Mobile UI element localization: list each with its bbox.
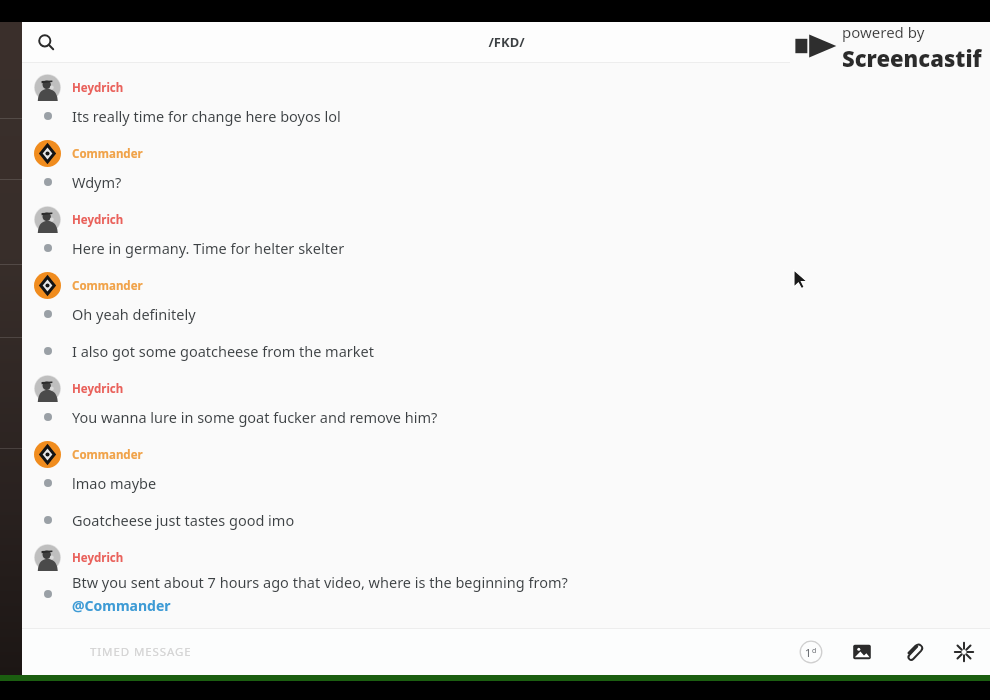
- staticText: Its really time for change here boyos lo…: [72, 106, 341, 126]
- staticText: Here in germany. Time for helter skelter: [72, 238, 345, 258]
- button[interactable]: Search: [28, 24, 64, 60]
- staticText: Heydrich: [72, 212, 124, 228]
- staticText: Commander: [72, 278, 143, 294]
- staticText: 1: [805, 645, 812, 660]
- staticText: powered by: [842, 22, 925, 42]
- staticText: Goatcheese just tastes good imo: [72, 510, 295, 530]
- button[interactable]: @Commander: [72, 596, 171, 615]
- staticText: Wdym?: [72, 172, 122, 192]
- button[interactable]: Message timer: [791, 632, 831, 672]
- staticText: TIMED MESSAGE: [90, 644, 192, 660]
- staticText: Oh yeah definitely: [72, 304, 196, 324]
- button[interactable]: TIMED MESSAGE: [22, 629, 791, 675]
- staticText: I also got some goatcheese from the mark…: [72, 341, 374, 361]
- staticText: Screencastify: [842, 43, 990, 70]
- staticText: Heydrich: [72, 381, 124, 397]
- staticText: Heydrich: [72, 80, 124, 96]
- staticText: Commander: [72, 146, 143, 162]
- button[interactable]: Send photo: [842, 632, 882, 672]
- staticText: Btw you sent about 7 hours ago that vide…: [72, 572, 568, 592]
- staticText: You wanna lure in some goat fucker and r…: [72, 407, 438, 427]
- button[interactable]: More options: [944, 632, 984, 672]
- staticText: lmao maybe: [72, 473, 157, 493]
- button[interactable]: Attach file: [893, 632, 933, 672]
- staticText: Commander: [72, 447, 143, 463]
- staticText: d: [812, 646, 817, 656]
- button[interactable]: Info: [948, 25, 982, 59]
- staticText: Heydrich: [72, 550, 124, 566]
- button[interactable]: Call: [912, 25, 946, 59]
- staticText: /FKD/: [488, 33, 525, 51]
